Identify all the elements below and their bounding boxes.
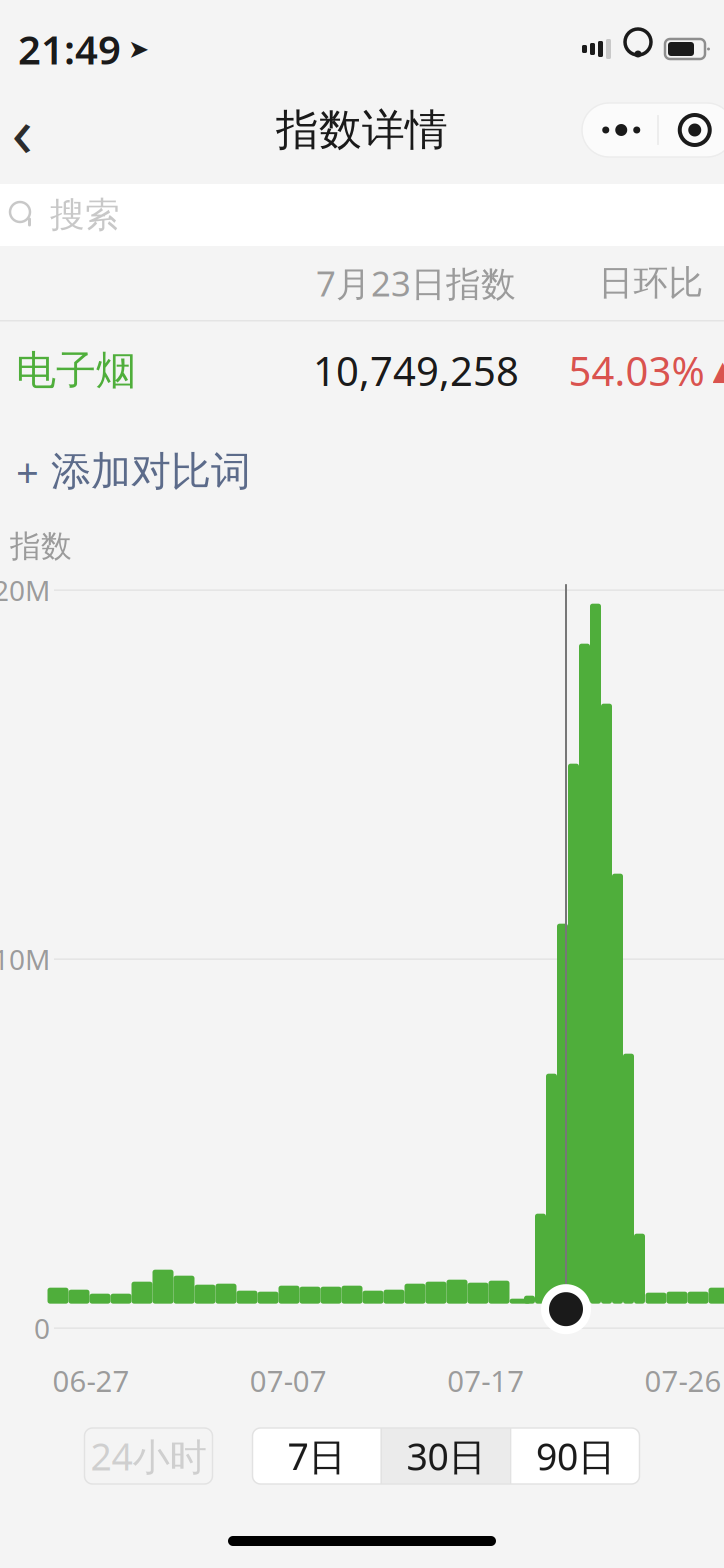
- button[interactable]: 返回: [0, 92, 60, 168]
- button[interactable]: 电子烟: [0, 321, 724, 419]
- staticText: 54.03%: [568, 344, 704, 397]
- staticText: 07-26: [644, 1361, 721, 1400]
- staticText: 20M: [0, 572, 50, 609]
- staticText: 90日: [536, 1431, 615, 1481]
- staticText: 日环比: [598, 262, 703, 304]
- button[interactable]: 更多: [585, 103, 657, 157]
- staticText: 0: [34, 1310, 50, 1347]
- button[interactable]: 24小时: [84, 1428, 212, 1484]
- staticText: 07-07: [250, 1361, 327, 1400]
- staticText: 30日: [406, 1431, 485, 1481]
- staticText: 指数详情: [276, 104, 448, 156]
- staticText: +: [16, 445, 39, 498]
- staticText: 电子烟: [16, 346, 136, 395]
- staticText: 7月23日指数: [316, 260, 516, 306]
- button[interactable]: 7日: [252, 1428, 380, 1484]
- staticText: 指数: [10, 527, 72, 565]
- staticText: 10M: [0, 941, 50, 978]
- button[interactable]: +: [10, 439, 257, 503]
- staticText: 7日: [287, 1431, 345, 1481]
- staticText: ➤: [128, 35, 149, 63]
- button[interactable]: 30日: [382, 1428, 510, 1484]
- staticText: 24小时: [90, 1431, 206, 1481]
- staticText: ‹: [11, 84, 32, 176]
- staticText: 06-27: [52, 1361, 129, 1400]
- staticText: 07-17: [447, 1361, 524, 1400]
- button[interactable]: 90日: [511, 1428, 639, 1484]
- button[interactable]: 关闭: [659, 103, 724, 157]
- staticText: 搜索: [50, 194, 120, 236]
- staticText: 添加对比词: [51, 447, 251, 496]
- staticText: 10,749,258: [313, 344, 519, 397]
- staticText: 21:49: [18, 22, 121, 75]
- button[interactable]: 搜索: [0, 184, 724, 246]
- staticText: ▲: [712, 355, 724, 386]
